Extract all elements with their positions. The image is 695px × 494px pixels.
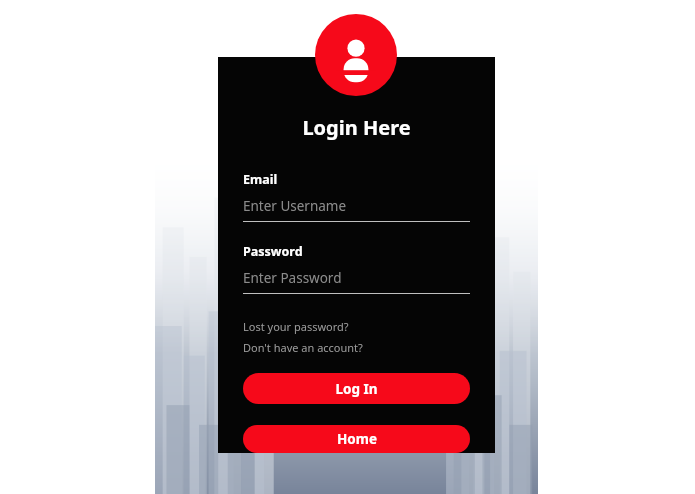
- button[interactable]: Enter Username: [243, 197, 470, 222]
- staticText: Enter Username: [243, 197, 347, 215]
- staticText: Lost your password?: [243, 319, 349, 334]
- staticText: Login Here: [302, 114, 411, 141]
- staticText: Log In: [335, 380, 378, 398]
- button[interactable]: Log In: [243, 373, 470, 404]
- staticText: Don't have an account?: [243, 340, 363, 355]
- staticText: Enter Password: [243, 269, 342, 287]
- button[interactable]: Home: [243, 425, 470, 453]
- staticText: Email: [243, 171, 278, 188]
- button[interactable]: User profile: [315, 14, 397, 96]
- staticText: Home: [337, 430, 377, 448]
- button[interactable]: Enter Password: [243, 269, 470, 294]
- button[interactable]: Don't have an account?: [243, 340, 363, 355]
- staticText: Password: [243, 243, 303, 260]
- button[interactable]: Lost your password?: [243, 319, 349, 334]
